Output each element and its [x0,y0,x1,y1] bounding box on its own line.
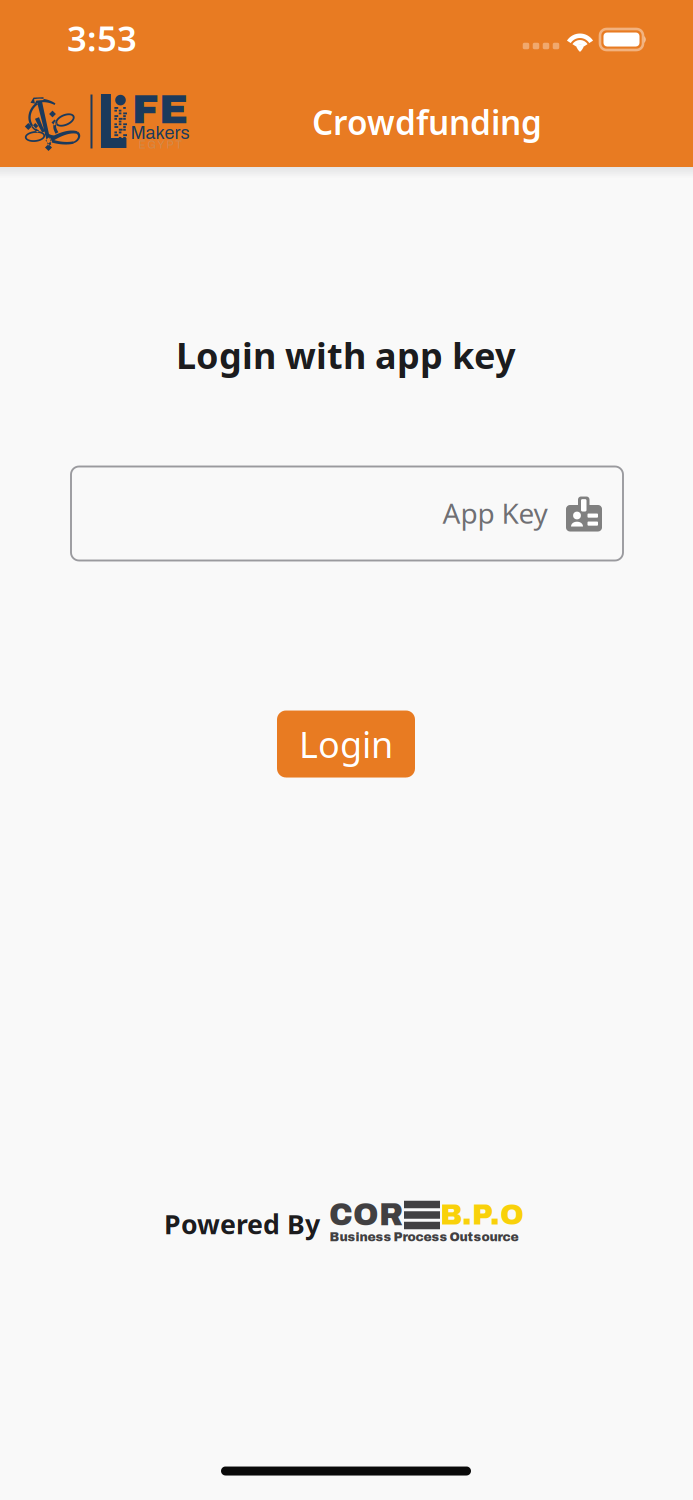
staticText: Business Process Outsource [329,1230,518,1244]
staticText: COR [329,1198,403,1232]
button[interactable]: App Key [71,466,623,560]
staticText: Makers [130,123,189,143]
staticText: Login [299,720,393,768]
button[interactable]: Login [277,710,415,777]
staticText: FE [132,88,188,132]
staticText: Login with app key [176,331,516,379]
staticText: Powered By [164,1206,320,1242]
staticText: Crowdfunding [312,100,542,144]
staticText: B.P.O [440,1199,524,1231]
staticText: 3:53 [67,15,137,61]
staticText: E G Y P T [138,139,181,151]
staticText: App Key [442,494,547,532]
